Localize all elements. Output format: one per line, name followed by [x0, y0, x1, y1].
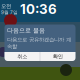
staticText: 다음으로 물음 [7, 27, 45, 34]
staticText: 취소 [17, 53, 27, 60]
staticText: 9월 7일 [1, 9, 18, 15]
staticText: 확인 [53, 53, 63, 60]
button[interactable]: 확인 [40, 52, 75, 61]
staticText: 10:36 [20, 1, 57, 17]
button[interactable]: 취소 [5, 52, 40, 61]
staticText: 오전 [1, 3, 11, 9]
staticText: 다음으로 공유하겠습니까 계속할 [7, 36, 71, 50]
